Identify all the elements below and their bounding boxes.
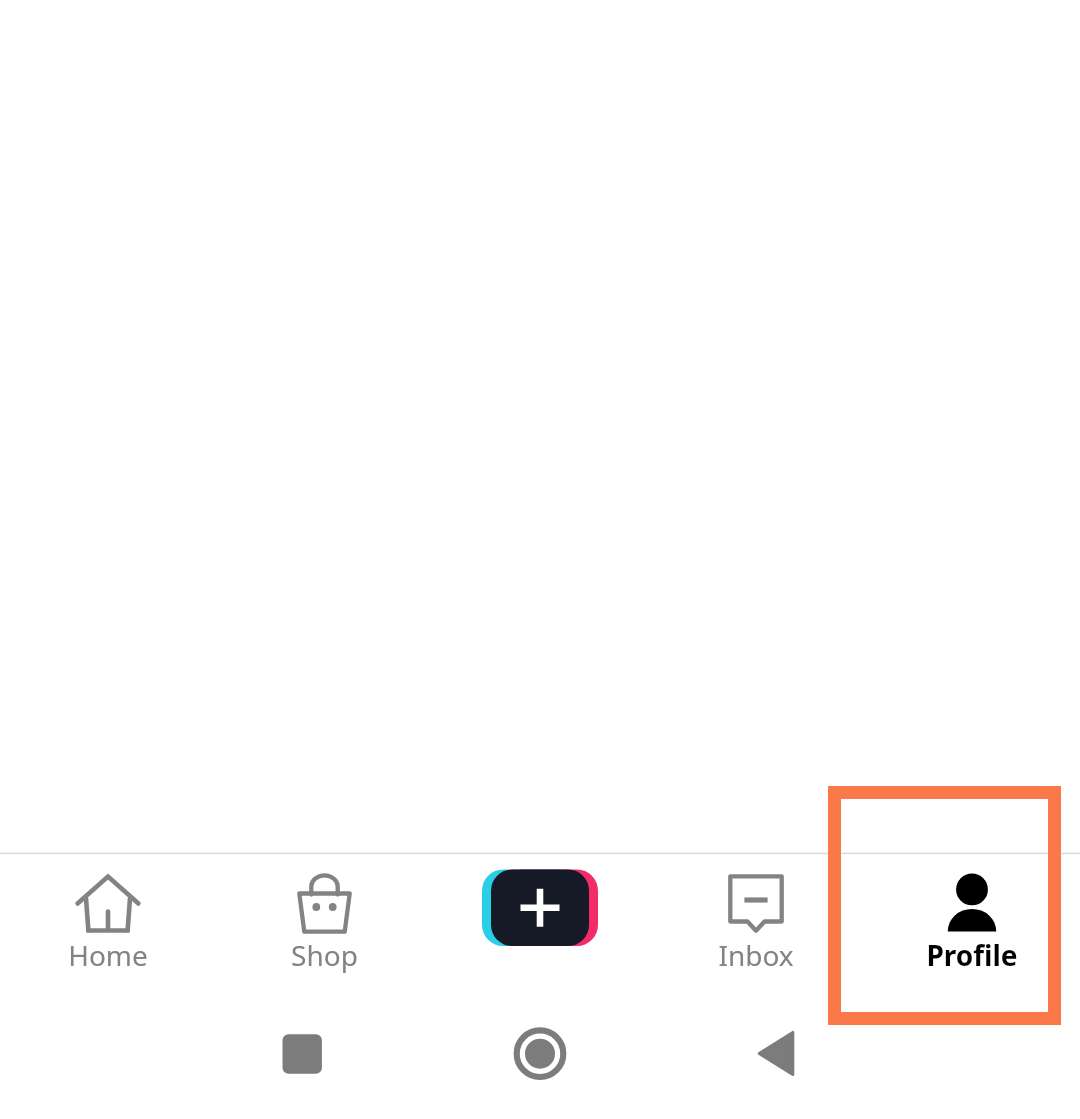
staticText: Profile <box>926 936 1018 974</box>
staticText: Inbox <box>718 936 794 974</box>
button[interactable]: Shop <box>216 854 432 1005</box>
staticText: Home <box>68 936 148 974</box>
button[interactable]: Create <box>480 868 600 948</box>
button[interactable]: Back <box>736 1005 816 1119</box>
button[interactable]: Home <box>0 854 216 1005</box>
button[interactable]: Profile <box>864 854 1080 1005</box>
button[interactable]: Inbox <box>648 854 864 1005</box>
button[interactable]: Home <box>500 1005 580 1119</box>
staticText: Shop <box>291 936 358 974</box>
button[interactable]: Recent apps <box>262 1005 342 1119</box>
